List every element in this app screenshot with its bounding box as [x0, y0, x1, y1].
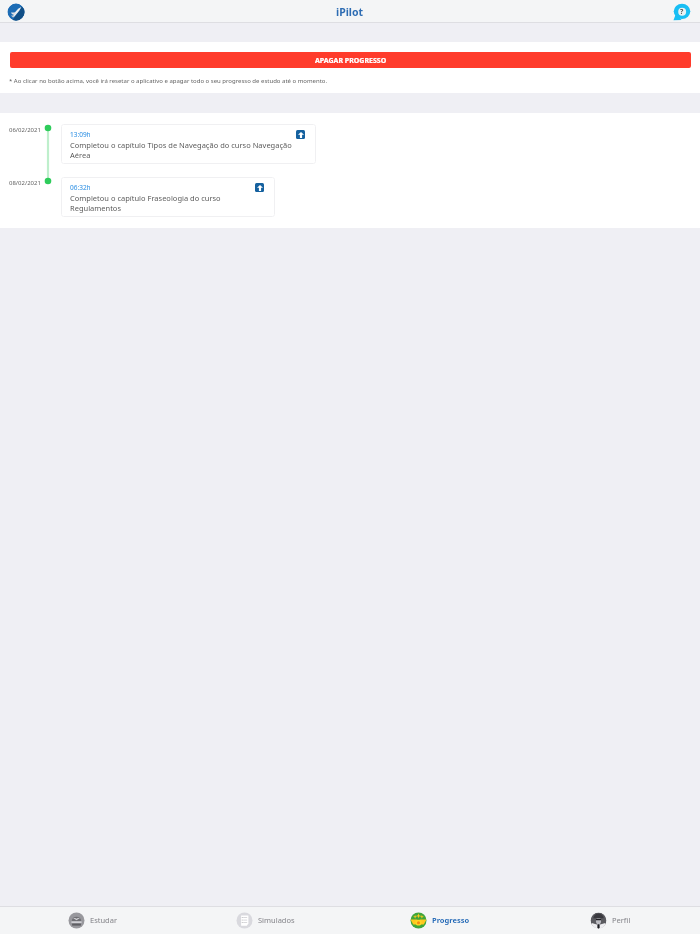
staticText: iPilot	[336, 5, 364, 19]
button[interactable]: Estudar	[68, 906, 118, 934]
button[interactable]: Expand entry	[296, 130, 305, 139]
button[interactable]: 13:09h	[61, 124, 316, 164]
staticText: 13:09h	[70, 130, 91, 139]
button[interactable]: Progresso	[410, 906, 470, 934]
staticText: 06:32h	[70, 183, 91, 192]
staticText: Progresso	[432, 915, 470, 925]
staticText: ?	[680, 7, 684, 17]
button[interactable]: APAGAR PROGRESSO	[10, 52, 691, 68]
staticText: Perfil	[612, 915, 631, 925]
button[interactable]: iPilot logo	[7, 3, 25, 21]
button[interactable]: Help	[673, 3, 691, 21]
staticText: 06/02/2021	[9, 126, 41, 134]
staticText: Completou o capítulo Tipos de Navegação …	[70, 140, 305, 160]
staticText: Estudar	[90, 915, 118, 925]
button[interactable]: 06:32h	[61, 177, 275, 217]
staticText: APAGAR PROGRESSO	[315, 56, 387, 66]
button[interactable]: Simulados	[236, 906, 295, 934]
button[interactable]: Expand entry	[255, 183, 264, 192]
button[interactable]: Perfil	[590, 906, 631, 934]
staticText: Completou o capítulo Fraseologia do curs…	[70, 193, 264, 213]
staticText: * Ao clicar no botão acima, você irá res…	[9, 77, 328, 85]
staticText: Simulados	[258, 915, 295, 925]
staticText: 08/02/2021	[9, 179, 41, 187]
